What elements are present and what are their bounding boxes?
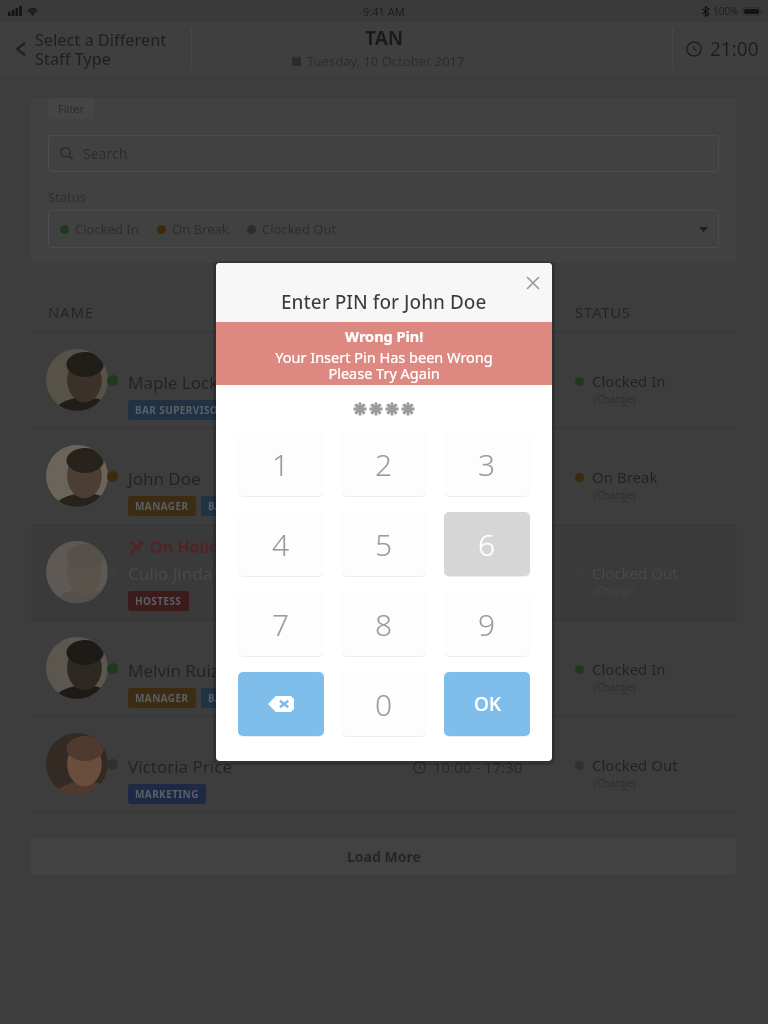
- staticText: Select a Different Staff Type: [35, 29, 167, 69]
- staticText: Clocked In: [75, 220, 139, 238]
- staticText: 21:00: [710, 36, 759, 62]
- staticText: On Break: [172, 220, 229, 238]
- staticText: 100%: [713, 4, 739, 18]
- staticText: 3: [478, 444, 496, 485]
- button[interactable]: Search: [48, 135, 719, 172]
- button[interactable]: 8: [341, 592, 427, 656]
- staticText: BAR SUPERVISOR: [135, 403, 226, 417]
- staticText: Enter PIN for John Doe: [281, 289, 487, 315]
- staticText: 10:00 - 17:30: [433, 757, 523, 777]
- button[interactable]: Select a Different Staff Type: [0, 22, 191, 76]
- staticText: Search: [83, 144, 128, 163]
- staticText: Maple Lock: [128, 371, 219, 394]
- button[interactable]: 0: [341, 672, 427, 736]
- staticText: 7: [272, 604, 290, 645]
- staticText: John Doe: [128, 467, 201, 490]
- staticText: On Break: [592, 467, 658, 487]
- staticText: TAN: [365, 25, 404, 51]
- staticText: MANAGER: [135, 691, 189, 705]
- staticText: Clocked In: [592, 371, 666, 391]
- button[interactable]: 1: [238, 432, 324, 496]
- button[interactable]: Victoria Price: [31, 717, 737, 812]
- staticText: 1: [272, 444, 290, 485]
- staticText: Culio Jinda: [128, 562, 213, 585]
- staticText: BAR: [208, 691, 230, 705]
- staticText: (Change): [594, 584, 637, 598]
- staticText: (Change): [594, 392, 637, 406]
- staticText: 2: [375, 444, 393, 485]
- button[interactable]: OK: [444, 672, 530, 736]
- staticText: OK: [474, 691, 501, 717]
- staticText: MARKETING: [135, 787, 199, 801]
- staticText: MANAGER: [135, 499, 189, 513]
- button[interactable]: 9: [444, 592, 530, 656]
- button[interactable]: Maple Lock: [31, 333, 737, 428]
- staticText: Status: [48, 188, 87, 206]
- staticText: 0: [375, 684, 393, 725]
- button[interactable]: Filter: [48, 98, 94, 119]
- staticText: 5: [375, 524, 393, 565]
- staticText: On Holiday: [150, 536, 238, 558]
- button[interactable]: 6: [444, 512, 530, 576]
- staticText: Clocked Out: [592, 755, 678, 775]
- staticText: BAR: [208, 499, 230, 513]
- staticText: Filter: [58, 101, 85, 116]
- staticText: Your Insert Pin Has been Wrong Please Tr…: [275, 347, 493, 384]
- staticText: NAME: [48, 302, 94, 322]
- staticText: Victoria Price: [128, 755, 232, 778]
- button[interactable]: 5: [341, 512, 427, 576]
- staticText: Clocked Out: [262, 220, 337, 238]
- staticText: 8: [375, 604, 393, 645]
- staticText: 6: [478, 524, 496, 565]
- staticText: 4: [272, 524, 290, 565]
- button[interactable]: Close: [521, 271, 545, 295]
- staticText: Load More: [347, 847, 421, 866]
- button[interactable]: 21:00: [673, 22, 768, 76]
- staticText: STATUS: [575, 302, 631, 322]
- staticText: HOSTESS: [135, 594, 182, 608]
- button[interactable]: 4: [238, 512, 324, 576]
- staticText: 9:41 AM: [363, 4, 405, 19]
- button[interactable]: Clocked In: [48, 210, 719, 248]
- button[interactable]: Backspace: [238, 672, 324, 736]
- staticText: 9: [478, 604, 496, 645]
- button[interactable]: John Doe: [31, 429, 737, 524]
- staticText: (Change): [594, 680, 637, 694]
- staticText: Tuesday, 10 October 2017: [307, 52, 465, 70]
- staticText: Melvin Ruiz: [128, 659, 219, 682]
- staticText: (Change): [594, 488, 637, 502]
- staticText: Clocked In: [592, 659, 666, 679]
- button[interactable]: Melvin Ruiz: [31, 621, 737, 716]
- button[interactable]: 7: [238, 592, 324, 656]
- button[interactable]: 2: [341, 432, 427, 496]
- button[interactable]: 3: [444, 432, 530, 496]
- staticText: (Change): [594, 776, 637, 790]
- button[interactable]: On Holiday: [31, 525, 737, 620]
- staticText: Wrong Pin!: [345, 326, 424, 346]
- staticText: Clocked Out: [592, 563, 678, 583]
